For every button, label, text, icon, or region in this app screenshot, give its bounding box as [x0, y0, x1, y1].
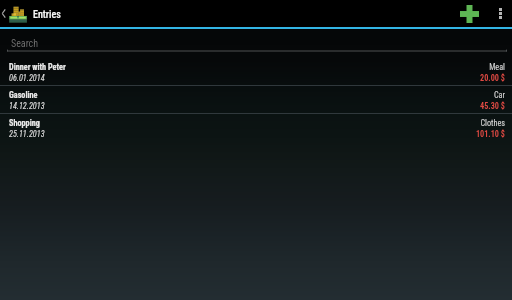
staticText: Dinner with Peter: [9, 62, 66, 72]
staticText: Gasoline: [9, 90, 38, 100]
button[interactable]: Dinner with Peter: [0, 58, 512, 85]
button[interactable]: Navigate up: [0, 0, 27, 27]
button[interactable]: Shopping: [0, 114, 512, 141]
staticText: Entries: [33, 9, 61, 21]
button[interactable]: Add entry: [451, 0, 488, 27]
staticText: Meal: [489, 62, 505, 72]
staticText: 20.00 $: [480, 73, 505, 83]
staticText: Search: [11, 38, 39, 50]
staticText: 06.01.2014: [9, 73, 45, 83]
staticText: 101.10 $: [475, 129, 505, 139]
button[interactable]: More options: [488, 0, 512, 27]
staticText: Shopping: [9, 118, 40, 128]
staticText: 25.11.2013: [9, 129, 45, 139]
staticText: Car: [493, 90, 505, 100]
staticText: 45.30 $: [480, 101, 505, 111]
staticText: Clothes: [480, 118, 505, 128]
button[interactable]: Gasoline: [0, 86, 512, 113]
button[interactable]: Search: [0, 29, 512, 58]
staticText: 14.12.2013: [9, 101, 45, 111]
